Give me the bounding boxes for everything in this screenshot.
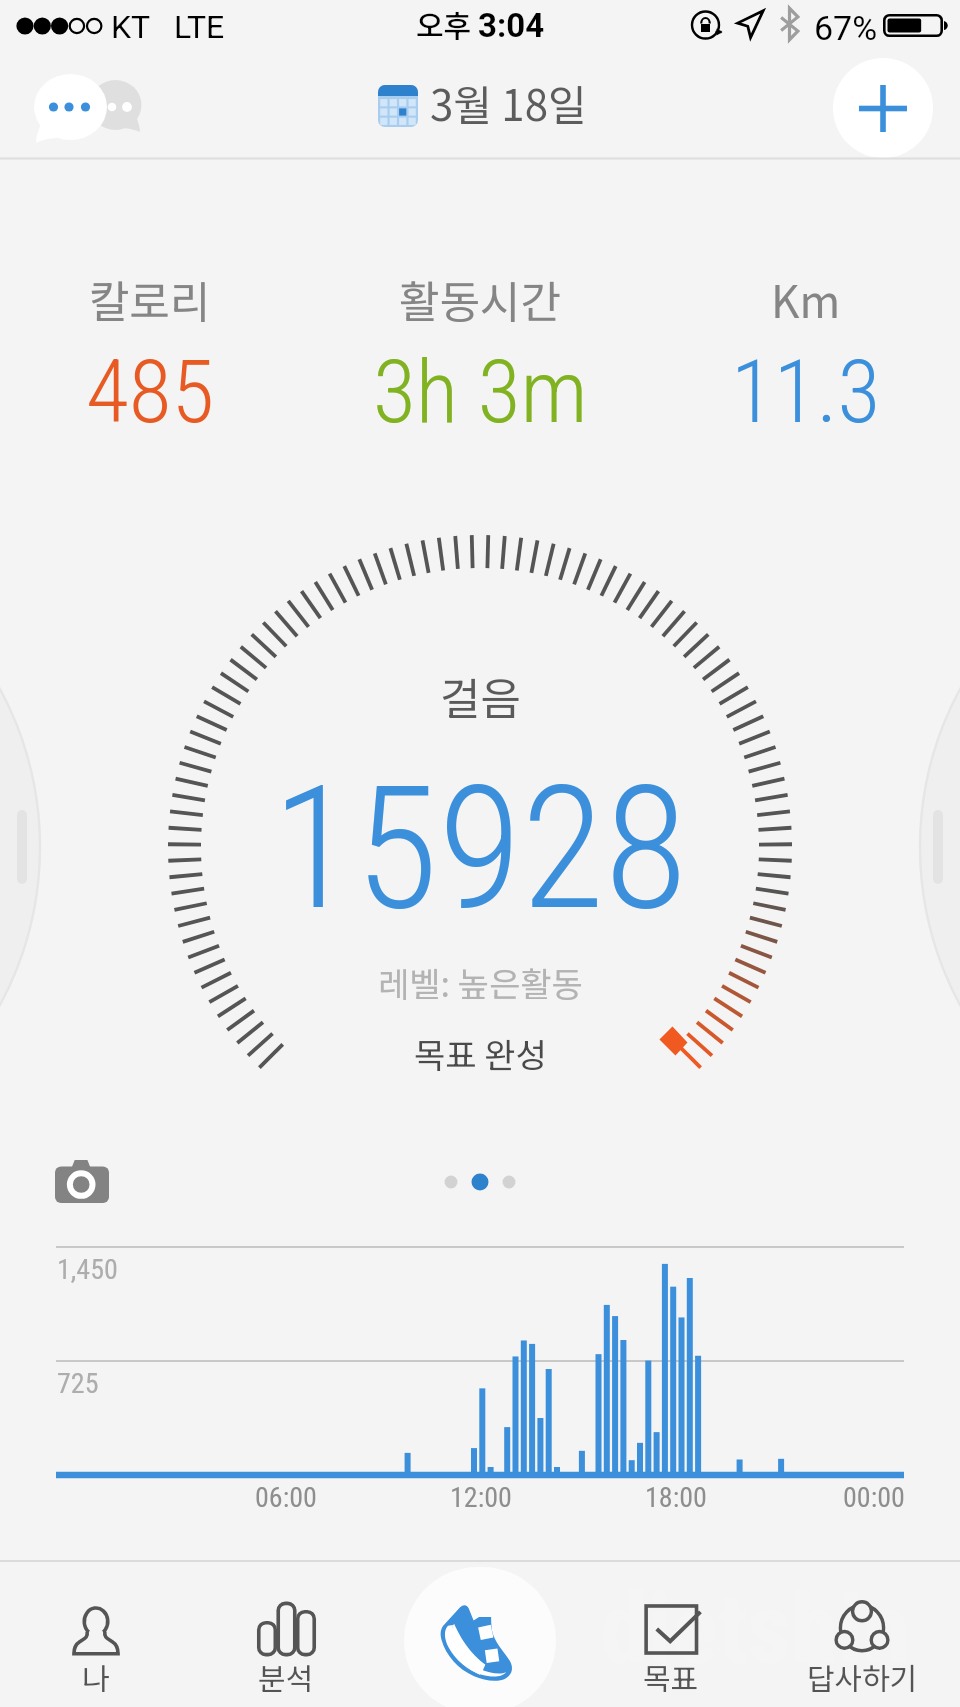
button[interactable]: 나 bbox=[1, 1595, 191, 1700]
staticText: 목표 bbox=[643, 1655, 699, 1698]
button[interactable]: 칼로리 bbox=[0, 267, 300, 443]
staticText: 18:00 bbox=[645, 1481, 707, 1514]
staticText: LTE bbox=[174, 8, 225, 46]
staticText: 레벨: 높은활동 bbox=[378, 958, 583, 1007]
staticText: 3h 3m bbox=[373, 340, 588, 443]
staticText: 오후 bbox=[416, 2, 478, 45]
staticText: 67% bbox=[814, 8, 878, 48]
staticText: 11.3 bbox=[731, 340, 881, 443]
button[interactable]: 3월 18일 bbox=[370, 70, 600, 132]
staticText: 1,450 bbox=[57, 1253, 118, 1286]
staticText: 06:00 bbox=[255, 1481, 317, 1514]
staticText: 00:00 bbox=[843, 1481, 905, 1514]
staticText: 725 bbox=[57, 1367, 99, 1400]
button[interactable]: Messages bbox=[24, 68, 148, 150]
staticText: 485 bbox=[86, 340, 215, 443]
button[interactable]: Camera bbox=[55, 1159, 109, 1203]
staticText: 걸음 bbox=[440, 664, 521, 728]
staticText: KT bbox=[111, 8, 151, 46]
staticText: 목표 완성 bbox=[414, 1029, 547, 1078]
button[interactable]: 활동시간 bbox=[330, 267, 630, 443]
staticText: 활동시간 bbox=[399, 267, 561, 331]
staticText: Km bbox=[771, 267, 841, 331]
button[interactable]: Add bbox=[833, 58, 933, 158]
button[interactable]: Km bbox=[656, 267, 956, 443]
staticText: 답사하기 bbox=[807, 1655, 918, 1698]
staticText: 12:00 bbox=[450, 1481, 512, 1514]
button[interactable]: 분석 bbox=[191, 1595, 381, 1700]
staticText: dietshin bbox=[600, 1573, 910, 1686]
staticText: 3월 18일 bbox=[430, 72, 587, 133]
staticText: 분석 bbox=[258, 1655, 314, 1698]
button[interactable]: Activity bbox=[404, 1567, 556, 1707]
staticText: 3:04 bbox=[478, 6, 545, 45]
staticText: 15928 bbox=[272, 748, 688, 948]
button[interactable]: 목표 bbox=[576, 1595, 766, 1700]
button[interactable]: 답사하기 bbox=[767, 1595, 957, 1700]
staticText: 나 bbox=[82, 1655, 110, 1698]
staticText: 칼로리 bbox=[89, 267, 211, 331]
